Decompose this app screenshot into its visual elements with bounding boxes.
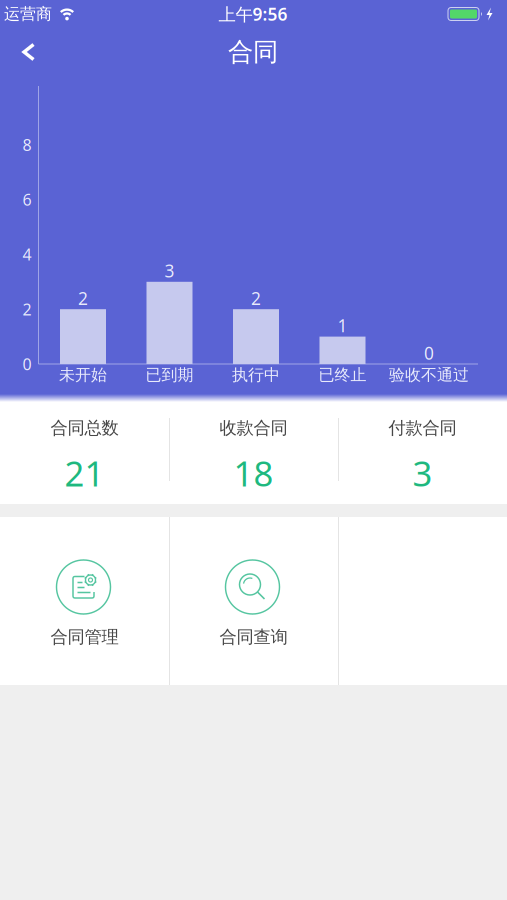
staticText: 3 — [412, 450, 432, 496]
staticText: 2 — [251, 287, 261, 310]
staticText: 8 — [22, 134, 31, 155]
staticText: 4 — [22, 244, 31, 265]
staticText: 21 — [64, 450, 104, 496]
staticText: 验收不通过 — [389, 365, 469, 385]
staticText: 合同总数 — [50, 417, 118, 439]
staticText: 0 — [424, 341, 434, 364]
staticText: 合同 — [228, 36, 278, 67]
staticText: 运营商 — [4, 4, 52, 24]
staticText: 付款合同 — [388, 417, 456, 439]
staticText: 18 — [233, 450, 273, 496]
staticText: 合同查询 — [219, 626, 287, 648]
staticText: 收款合同 — [219, 417, 287, 439]
staticText: 上午9:56 — [218, 2, 287, 25]
staticText: 3 — [164, 259, 174, 282]
button[interactable]: 合同管理 — [0, 517, 169, 685]
staticText: 2 — [78, 287, 88, 310]
staticText: 已到期 — [145, 365, 193, 385]
staticText: 已终止 — [318, 365, 366, 385]
staticText: 执行中 — [232, 365, 280, 385]
staticText: 0 — [22, 353, 31, 375]
staticText: 2 — [22, 299, 31, 320]
staticText: 合同管理 — [50, 626, 118, 648]
staticText: 未开始 — [59, 365, 107, 385]
button[interactable]: 合同查询 — [169, 517, 338, 685]
staticText: 1 — [337, 314, 347, 337]
staticText: 6 — [22, 189, 31, 210]
button[interactable] — [6, 30, 50, 74]
